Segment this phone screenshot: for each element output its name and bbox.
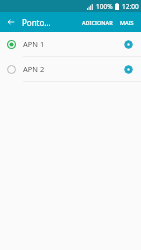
button[interactable]: Back <box>5 16 17 28</box>
staticText: Pontos de ace… <box>22 17 51 28</box>
staticText: 12:00 <box>122 2 139 11</box>
staticText: APN 1 <box>23 39 118 49</box>
staticText: MAIS <box>120 19 134 26</box>
staticText: 100% <box>96 2 113 11</box>
button[interactable]: APN 1 <box>0 32 141 56</box>
staticText: ADICIONAR <box>82 19 113 26</box>
button[interactable]: APN 2 <box>0 57 141 81</box>
staticText: APN 2 <box>23 64 118 74</box>
button[interactable]: Settings for APN 1 <box>118 34 138 54</box>
button[interactable]: MAIS <box>118 16 136 29</box>
button[interactable]: Settings for APN 2 <box>118 59 138 79</box>
button[interactable]: ADICIONAR <box>80 16 115 29</box>
